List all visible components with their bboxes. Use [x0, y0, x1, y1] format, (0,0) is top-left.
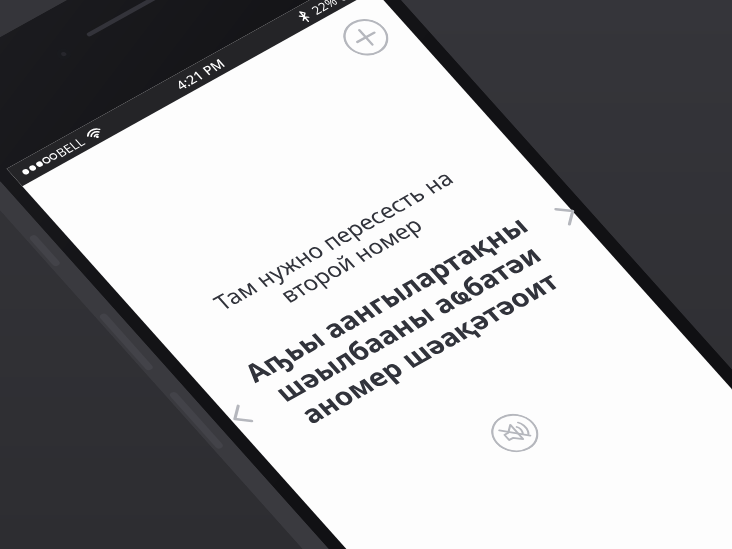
button[interactable]: Next — [539, 192, 595, 237]
staticText: Аҧьы аангылартақны шәылбааны аҩбатәи ано… — [215, 196, 600, 450]
staticText: 22% — [307, 0, 341, 18]
button[interactable]: Add — [334, 12, 398, 63]
button[interactable]: Previous — [213, 393, 268, 438]
staticText: Там нужно пересесть на второй номер — [164, 140, 519, 359]
button[interactable]: Mute — [481, 406, 548, 460]
staticText: 4:21 PM — [172, 55, 229, 93]
staticText: BELL — [52, 133, 89, 160]
